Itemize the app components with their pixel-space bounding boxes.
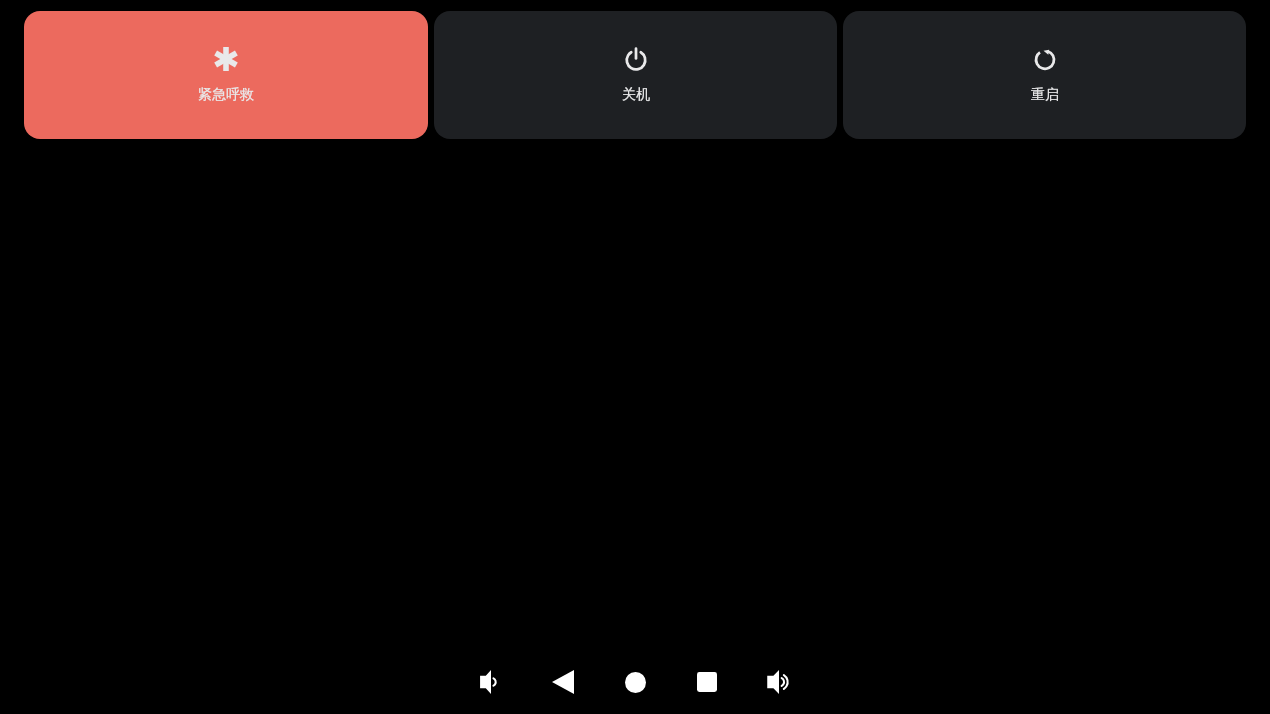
staticText: 关机 (622, 86, 650, 104)
button[interactable]: Recents (671, 654, 743, 710)
button[interactable]: 紧急呼救 (24, 11, 428, 139)
staticText: 重启 (1031, 86, 1059, 104)
button[interactable]: Home (599, 654, 671, 710)
staticText: 紧急呼救 (198, 86, 254, 104)
button[interactable]: 关机 (434, 11, 837, 139)
button[interactable]: Back (527, 654, 599, 710)
button[interactable]: 重启 (843, 11, 1246, 139)
button[interactable]: Volume down (455, 654, 527, 710)
button[interactable]: Volume up (743, 654, 815, 710)
